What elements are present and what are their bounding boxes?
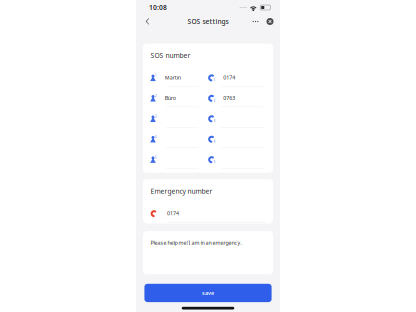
staticText: Martin [165, 74, 181, 81]
staticText: 3 [155, 115, 157, 118]
staticText: SOS number [150, 51, 190, 60]
staticText: 4 [155, 135, 157, 139]
button[interactable]: 4 [143, 129, 273, 149]
staticText: 2 [155, 94, 157, 98]
staticText: Büro [165, 94, 176, 101]
button[interactable]: 1 [143, 67, 273, 88]
staticText: 0763 [223, 94, 235, 101]
button[interactable]: Close [263, 15, 276, 28]
staticText: SOS settings [187, 17, 228, 26]
button[interactable]: save [144, 284, 272, 302]
staticText: 5 [214, 160, 216, 164]
button[interactable]: 2 [143, 88, 273, 108]
staticText: 1 [155, 74, 157, 77]
button[interactable]: 3 [143, 108, 273, 129]
button[interactable]: 5 [143, 149, 273, 170]
staticText: 5 [155, 156, 157, 159]
button[interactable]: Back [140, 14, 154, 28]
staticText: 0174 [223, 74, 235, 81]
staticText: 0174 [167, 210, 179, 217]
staticText: Emergency number [150, 187, 212, 196]
staticText: 4 [214, 140, 216, 143]
button[interactable]: 0174 [143, 203, 273, 224]
staticText: Please help me! I am in an emergency. [150, 239, 241, 246]
button[interactable]: More options [249, 15, 261, 27]
staticText: 1 [214, 78, 216, 82]
staticText: save [202, 289, 214, 296]
staticText: 3 [214, 119, 216, 123]
staticText: 2 [214, 99, 216, 102]
staticText: 10:08 [149, 3, 167, 12]
